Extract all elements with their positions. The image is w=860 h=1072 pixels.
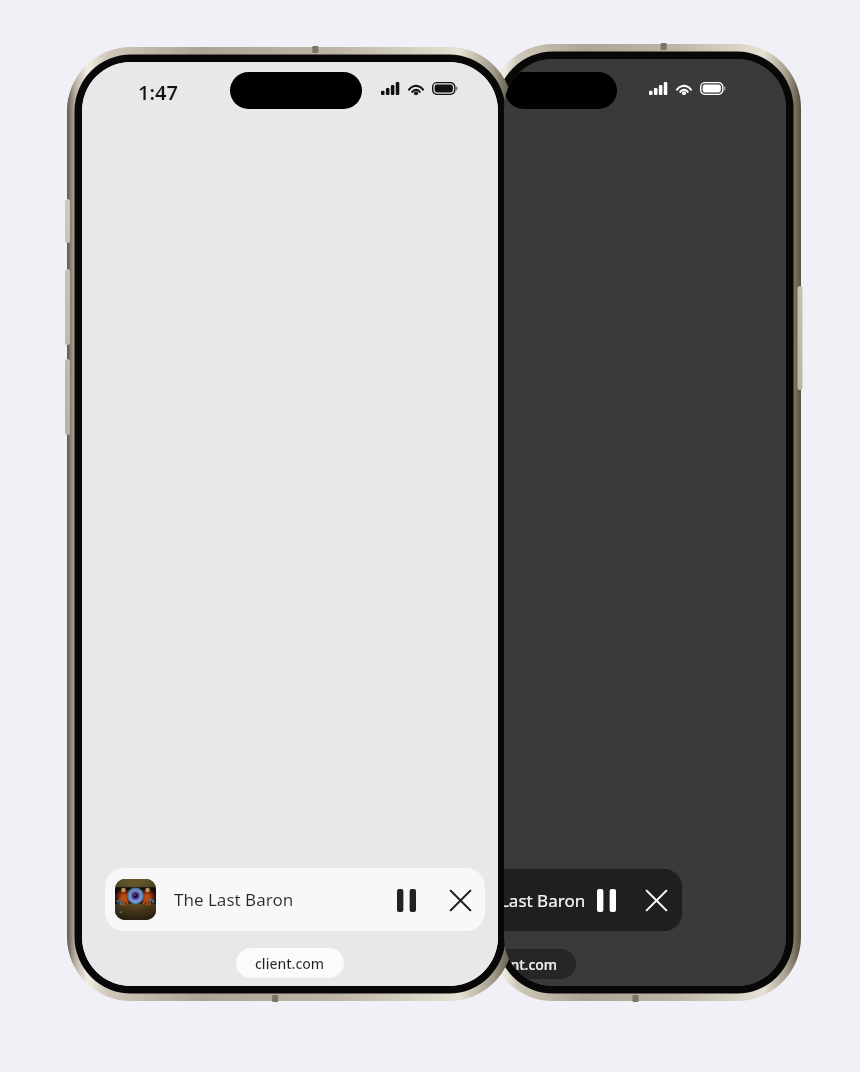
staticText: The Last Baron [174,888,294,911]
staticText: The Last Baron [504,889,586,912]
button[interactable]: client.com [504,949,576,979]
button[interactable]: The Last Baron [105,868,485,931]
button[interactable]: Close [636,880,676,920]
staticText: client.com [504,955,558,974]
button[interactable]: client.com [236,948,344,978]
staticText: client.com [255,954,325,973]
button[interactable]: Pause [385,879,427,921]
staticText: 1:47 [138,79,178,106]
button[interactable]: Pause [586,880,626,920]
button[interactable]: The Last Baron [504,869,682,931]
button[interactable]: Close [439,879,481,921]
